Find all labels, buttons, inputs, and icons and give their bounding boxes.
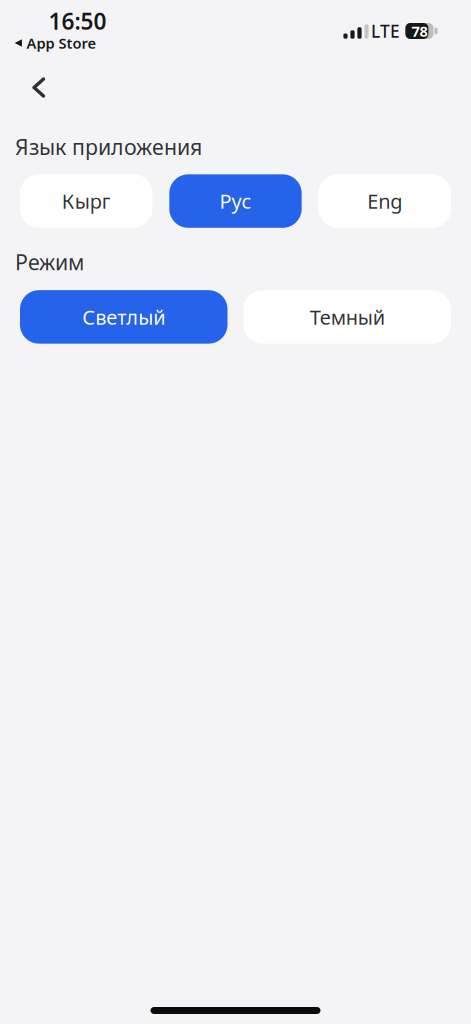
button[interactable]: Eng xyxy=(319,174,451,228)
staticText: Язык приложения xyxy=(15,132,202,161)
button[interactable]: Back xyxy=(0,56,43,96)
button[interactable]: Back to App Store xyxy=(14,33,96,53)
staticText: 78 xyxy=(411,21,427,41)
staticText: 16:50 xyxy=(48,6,106,36)
button[interactable]: Светлый xyxy=(20,290,227,344)
staticText: Кырг xyxy=(62,188,111,214)
staticText: Светлый xyxy=(82,304,165,330)
staticText: App Store xyxy=(26,33,96,53)
staticText: Темный xyxy=(310,304,385,330)
staticText: Рус xyxy=(219,188,251,214)
button[interactable]: Темный xyxy=(243,290,451,344)
staticText: Eng xyxy=(367,188,402,214)
staticText: Режим xyxy=(15,248,84,276)
button[interactable]: Кырг xyxy=(20,174,152,228)
staticText: LTE xyxy=(371,19,400,42)
button[interactable]: Рус xyxy=(169,174,302,228)
